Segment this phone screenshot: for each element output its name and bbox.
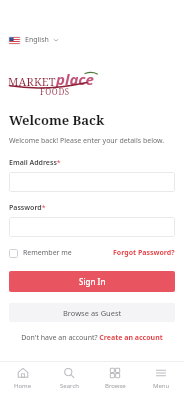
staticText: Sign In (79, 276, 106, 287)
staticText: Home (14, 382, 32, 390)
staticText: Remember me (23, 248, 72, 258)
button[interactable]: Menu (138, 364, 184, 393)
staticText: English (25, 35, 49, 45)
staticText: Password* (9, 203, 46, 213)
button[interactable]: Browse as Guest (9, 303, 175, 322)
staticText: place (56, 69, 94, 89)
staticText: Email Address* (9, 158, 61, 168)
staticText: MARKET (8, 74, 56, 89)
other: Search (63, 367, 75, 379)
button[interactable]: Home (0, 364, 46, 393)
staticText: Welcome Back (9, 111, 105, 129)
staticText: Menu (153, 382, 170, 390)
button[interactable]: Sign In (9, 271, 175, 292)
other: Browse (109, 367, 121, 379)
button[interactable] (9, 172, 175, 192)
other: Marketplace Foods logo (8, 69, 102, 97)
staticText: Don't have an account? Create an account (21, 333, 163, 343)
button[interactable]: Don't have an account? Create an account (9, 333, 175, 343)
staticText: Browse (105, 382, 126, 390)
staticText: Forgot Password? (113, 248, 175, 258)
staticText: Browse as Guest (63, 308, 122, 318)
button[interactable]: English (7, 33, 61, 47)
staticText: FOODS (40, 86, 70, 97)
staticText: Search (60, 382, 79, 390)
staticText: Welcome back! Please enter your details … (9, 136, 165, 146)
button[interactable]: Forgot Password? (113, 246, 175, 260)
button[interactable] (9, 217, 175, 237)
button[interactable]: Search (46, 364, 92, 393)
button[interactable]: Remember me (9, 246, 72, 260)
other: Home (17, 367, 29, 379)
other: Menu (155, 367, 167, 379)
button[interactable]: Browse (92, 364, 138, 393)
